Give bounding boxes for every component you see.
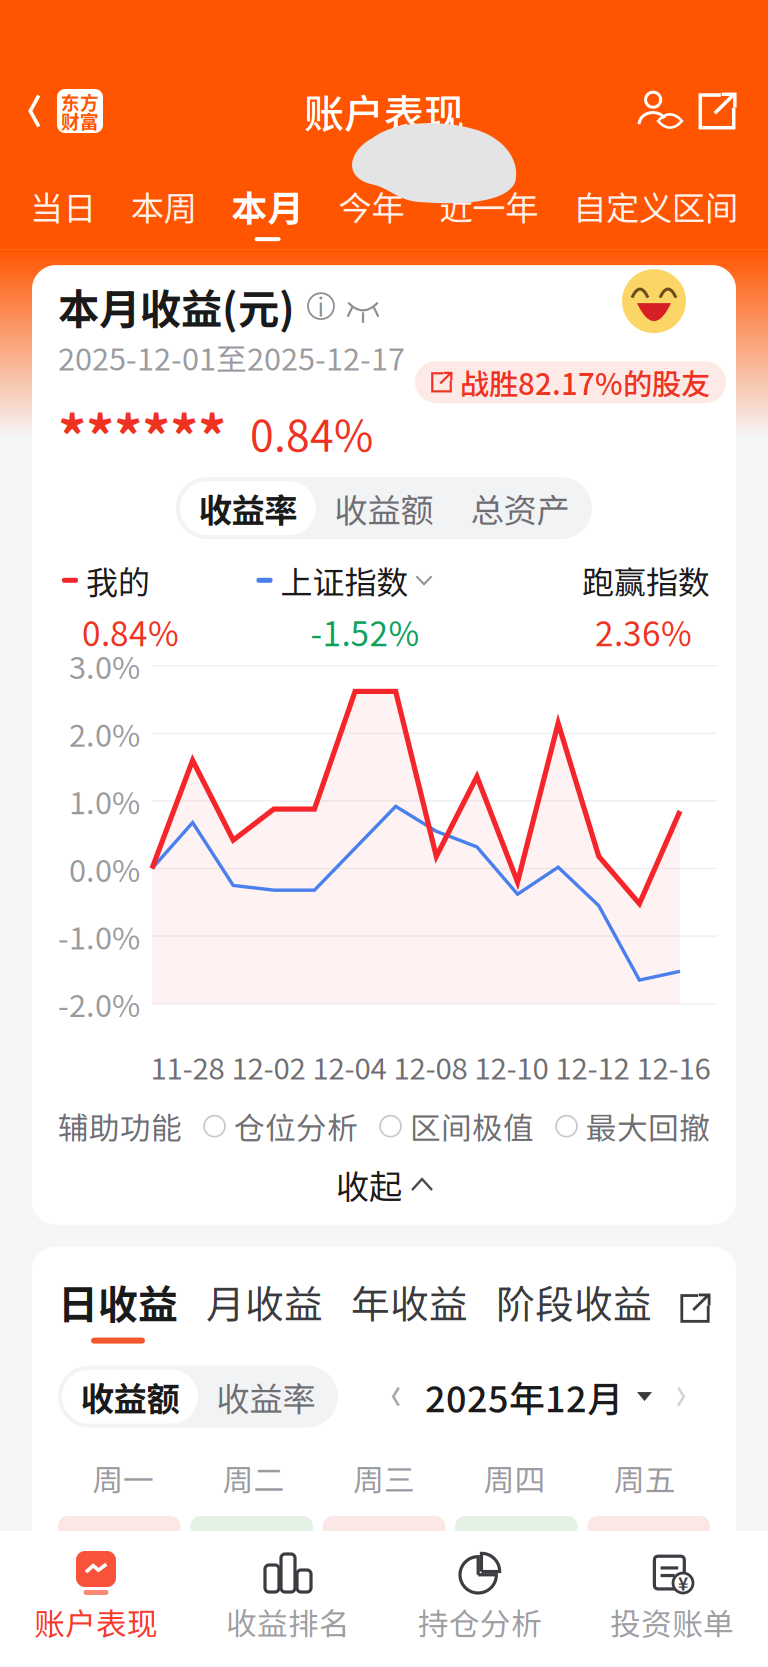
button[interactable]: 账户表现 — [0, 1531, 192, 1639]
staticText: 周四 — [483, 1456, 545, 1500]
button[interactable]: 近一年 — [439, 182, 538, 239]
staticText: 11-28 — [150, 1045, 224, 1088]
button[interactable]: 收益率 — [198, 1370, 334, 1424]
button[interactable]: 持仓分析 — [384, 1531, 576, 1639]
staticText: 2 — [242, 1528, 261, 1576]
button[interactable]: 总资产 — [452, 481, 588, 535]
button[interactable]: 年收益 — [351, 1274, 468, 1343]
button[interactable]: 区间极值 — [380, 1104, 534, 1148]
staticText: 投资账单 — [610, 1600, 734, 1644]
button[interactable]: 日收益 — [58, 1273, 178, 1344]
staticText: 周二 — [223, 1456, 285, 1500]
button[interactable]: 4 — [455, 1516, 578, 1596]
button[interactable]: 月收益 — [206, 1274, 323, 1343]
staticText: 日收益 — [58, 1273, 178, 1331]
staticText: 2025年12月 — [425, 1370, 623, 1423]
staticText: 收起 — [336, 1160, 402, 1209]
staticText: 12-16 — [636, 1045, 710, 1088]
button[interactable]: ¥ — [576, 1531, 768, 1639]
staticText: 0.84% — [250, 402, 373, 464]
button[interactable]: 2 — [190, 1516, 313, 1596]
button[interactable]: 3 — [323, 1516, 445, 1596]
staticText: 收益额 — [334, 484, 433, 532]
staticText: 东方 — [61, 88, 99, 115]
staticText: 收益率 — [216, 1372, 315, 1421]
staticText: 账户表现 — [304, 82, 464, 140]
staticText: 周五 — [614, 1456, 676, 1500]
staticText: 3 — [374, 1528, 393, 1576]
button[interactable]: 自定义区间 — [573, 182, 738, 239]
staticText: ****** — [58, 393, 226, 474]
button[interactable]: 下一月 — [666, 1382, 696, 1412]
staticText: 3.0% — [69, 643, 140, 688]
staticText: 本月 — [232, 180, 304, 232]
button[interactable]: 当日 — [30, 182, 96, 239]
staticText: 12-08 — [393, 1045, 467, 1088]
staticText: 自定义区间 — [573, 182, 738, 230]
staticText: 持仓分析 — [418, 1600, 542, 1644]
button[interactable]: 战胜82.17%的股友 — [415, 361, 726, 403]
staticText: 财富 — [61, 107, 99, 134]
button[interactable]: 最大回撤 — [556, 1104, 710, 1148]
button[interactable]: 今年 — [338, 182, 404, 239]
button[interactable]: 隐藏金额 — [347, 295, 379, 317]
button[interactable]: 收起 — [58, 1150, 710, 1219]
staticText: 周一 — [92, 1456, 154, 1500]
staticText: 我的 — [86, 557, 150, 603]
staticText: 总资产 — [470, 484, 569, 532]
button[interactable]: 本周 — [131, 182, 197, 239]
staticText: 月收益 — [206, 1274, 323, 1330]
button[interactable]: 分享 — [686, 84, 748, 138]
staticText: 周三 — [353, 1456, 415, 1500]
staticText: 账户表现 — [34, 1600, 158, 1644]
button[interactable]: 收益率 — [180, 481, 316, 535]
staticText: 辅助功能 — [58, 1104, 182, 1148]
staticText: 收益率 — [198, 484, 297, 532]
staticText: 2.0% — [69, 711, 140, 755]
staticText: 12-10 — [474, 1045, 548, 1088]
staticText: 年收益 — [351, 1274, 468, 1330]
staticText: 本周 — [131, 182, 197, 230]
staticText: -2.0% — [58, 981, 140, 1026]
staticText: 12-12 — [555, 1045, 629, 1088]
staticText: -1.0% — [58, 914, 140, 958]
button[interactable]: 账户 — [632, 84, 686, 138]
staticText: 12-02 — [231, 1045, 305, 1088]
staticText: 最大回撤 — [586, 1104, 710, 1148]
staticText: ¥ — [678, 1570, 688, 1596]
staticText: 区间极值 — [410, 1104, 534, 1148]
staticText: 收益额 — [80, 1372, 179, 1421]
button[interactable]: 收益额 — [316, 481, 452, 535]
staticText: 仓位分析 — [234, 1104, 358, 1148]
staticText: i — [317, 289, 324, 324]
staticText: 1 — [110, 1528, 129, 1576]
staticText: 战胜82.17%的股友 — [460, 361, 710, 403]
button[interactable]: 返回 东方财富 — [0, 81, 103, 141]
staticText: 当日 — [30, 182, 96, 230]
staticText: 1.0% — [69, 779, 140, 823]
button[interactable]: 收益额 — [62, 1370, 198, 1424]
button[interactable]: 仓位分析 — [204, 1104, 358, 1148]
staticText: 5 — [639, 1528, 658, 1576]
staticText: 0.84% — [82, 607, 179, 656]
staticText: -1.52% — [310, 607, 419, 656]
button[interactable]: 本月 — [232, 180, 304, 241]
staticText: 0.0% — [69, 846, 140, 891]
button[interactable]: 收益排名 — [192, 1531, 384, 1639]
staticText: 4 — [507, 1528, 526, 1576]
staticText: 本月收益(元) — [58, 276, 295, 336]
button[interactable]: 5 — [588, 1516, 710, 1596]
staticText: 2.36% — [595, 607, 692, 656]
staticText: 阶段收益 — [496, 1274, 652, 1330]
staticText: 2025-12-01至2025-12-17 — [58, 335, 405, 379]
button[interactable]: 阶段收益 — [496, 1274, 652, 1343]
button[interactable]: 1 — [58, 1516, 180, 1596]
staticText: 近一年 — [439, 182, 538, 230]
button[interactable]: 上一月 — [381, 1382, 411, 1412]
button[interactable]: 分享收益 — [680, 1293, 710, 1323]
staticText: 上证指数 — [280, 557, 408, 603]
staticText: 收益排名 — [226, 1600, 350, 1644]
staticText: 今年 — [338, 182, 404, 230]
button[interactable]: 说明 — [308, 289, 334, 324]
staticText: 12-04 — [312, 1045, 386, 1088]
